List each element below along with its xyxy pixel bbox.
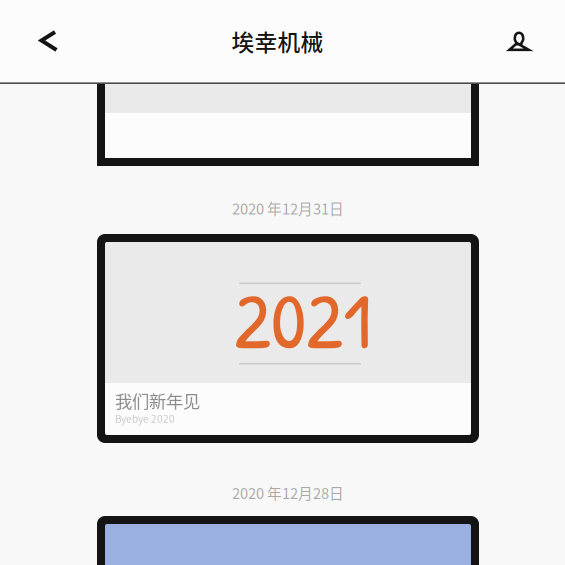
button[interactable]	[97, 516, 479, 565]
staticText: 我们新年见	[115, 388, 200, 413]
staticText: 2020 年12月31日	[232, 197, 344, 219]
button[interactable]	[97, 84, 479, 166]
button[interactable]: Profile	[491, 4, 547, 78]
staticText: 2020 年12月28日	[232, 482, 344, 503]
staticText: 2021	[234, 266, 372, 373]
button[interactable]: Back	[21, 4, 77, 78]
staticText: Byebye 2020	[115, 411, 175, 426]
staticText: 埃幸机械	[231, 25, 323, 57]
button[interactable]: 2021	[97, 234, 479, 443]
